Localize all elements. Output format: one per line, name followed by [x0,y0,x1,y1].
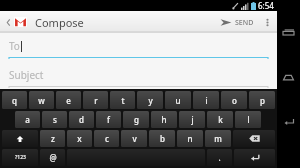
button[interactable]: x [67,130,92,147]
staticText: s [53,114,57,125]
staticText: l [247,114,250,125]
staticText: j [191,114,194,125]
staticText: f [107,114,110,125]
staticText: x [77,133,82,144]
staticText: ?123 [15,154,26,161]
button[interactable]: Back [277,110,300,132]
button[interactable]: Space [67,149,205,166]
button[interactable]: v [121,130,147,147]
button[interactable]: r [83,91,108,109]
button[interactable]: h [151,111,177,128]
button[interactable]: u [165,91,191,109]
button[interactable]: To [9,39,268,59]
staticText: i [205,95,208,106]
button[interactable]: w [29,91,54,109]
staticText: k [218,114,223,125]
button[interactable]: m [205,130,231,147]
staticText: w [38,95,45,106]
button[interactable]: f [96,111,121,128]
button[interactable]: o [221,91,247,109]
button[interactable]: q [2,91,27,109]
button[interactable]: Home [277,66,300,88]
staticText: Subject [9,68,44,82]
button[interactable]: Shift [2,130,38,147]
button[interactable]: j [179,111,205,128]
button[interactable]: i [193,91,219,109]
button[interactable]: p [249,91,275,109]
button[interactable]: s [42,111,67,128]
staticText: n [187,133,193,144]
button[interactable]: a [15,111,40,128]
button[interactable]: k [207,111,233,128]
other: Send [220,17,232,28]
staticText: q [12,95,17,106]
staticText: h [161,114,167,125]
button[interactable]: d [69,111,94,128]
button[interactable]: Navigate up [4,17,29,27]
button[interactable]: y [137,91,163,109]
staticText: 6:54 [258,0,274,11]
staticText: m [214,133,222,144]
button[interactable]: Subject [9,68,268,88]
button[interactable]: e [56,91,81,109]
staticText: @ [49,152,57,163]
staticText: z [51,133,55,144]
staticText: p [260,95,265,106]
button[interactable]: c [94,130,119,147]
staticText: b [160,133,165,144]
staticText: Compose [35,15,84,30]
staticText: t [121,95,125,106]
staticText: o [232,95,237,106]
staticText: To [9,39,20,53]
button[interactable]: @ [40,149,65,166]
button[interactable]: t [110,91,135,109]
staticText: e [66,95,71,106]
button[interactable]: b [149,130,175,147]
staticText: u [175,95,181,106]
staticText: . [218,152,221,163]
button[interactable]: g [123,111,149,128]
button[interactable]: Enter [234,149,275,166]
button[interactable]: Recent apps [277,22,300,44]
staticText: a [25,114,30,125]
staticText: d [79,114,84,125]
button[interactable]: z [40,130,65,147]
staticText: c [105,133,109,144]
staticText: y [148,95,153,106]
button[interactable]: ?123 [2,149,38,166]
staticText: g [134,114,139,125]
button[interactable]: More options [261,11,273,33]
staticText: SEND [235,18,254,28]
staticText: r [94,95,98,106]
button[interactable]: . [207,149,232,166]
button[interactable]: Delete [233,130,275,147]
staticText: v [132,133,137,144]
button[interactable]: Send [217,17,257,28]
button[interactable]: l [235,111,261,128]
button[interactable]: n [177,130,203,147]
